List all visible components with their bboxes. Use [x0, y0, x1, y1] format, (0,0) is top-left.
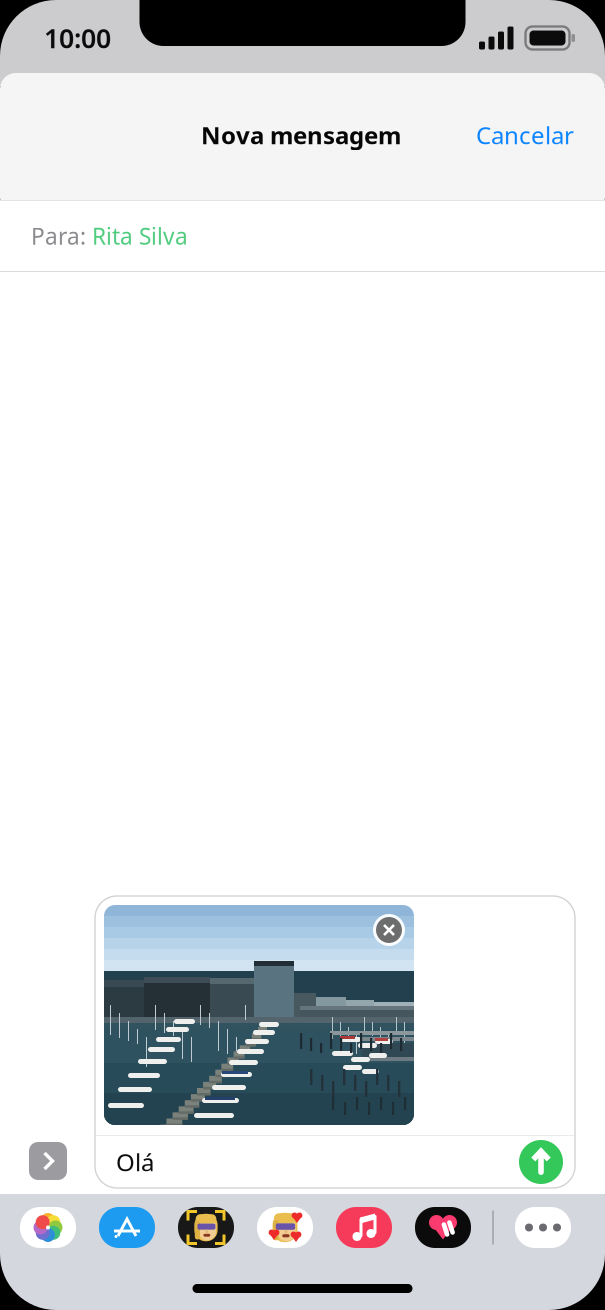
- button[interactable]: Music: [336, 1207, 392, 1248]
- button[interactable]: Cancelar: [461, 105, 589, 165]
- button[interactable]: Digital Touch: [415, 1207, 471, 1248]
- button[interactable]: Remove attachment: [373, 914, 405, 946]
- button[interactable]: More apps: [515, 1207, 571, 1248]
- staticText: 10:00: [44, 20, 111, 56]
- button[interactable]: Send: [519, 1140, 563, 1184]
- button[interactable]: Memoji stickers: [257, 1207, 313, 1248]
- staticText: Rita Silva: [92, 221, 188, 251]
- button[interactable]: Show app drawer: [29, 1142, 67, 1180]
- button[interactable]: App Store: [99, 1207, 155, 1248]
- staticText: Para:: [31, 221, 92, 251]
- button[interactable]: Photos: [20, 1207, 76, 1248]
- button[interactable]: Memoji: [178, 1207, 234, 1248]
- staticText: Olá: [116, 1146, 154, 1178]
- button[interactable]: Para:: [0, 200, 605, 272]
- staticText: Nova mensagem: [201, 119, 401, 151]
- staticText: Cancelar: [476, 119, 574, 151]
